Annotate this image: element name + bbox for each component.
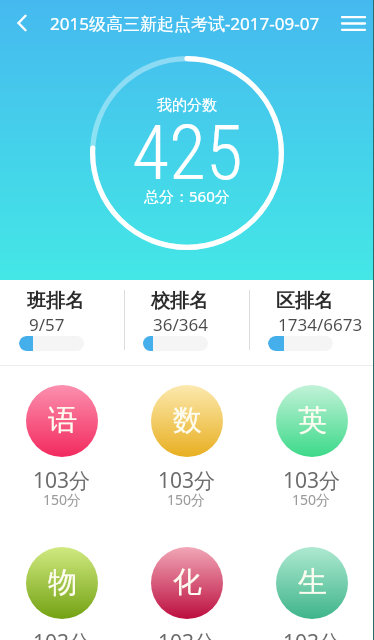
staticText: 英 bbox=[298, 402, 327, 439]
staticText: 150分 bbox=[167, 490, 206, 509]
staticText: 总分：560分 bbox=[144, 186, 230, 206]
staticText: 班排名 bbox=[27, 289, 84, 313]
staticText: 校排名 bbox=[151, 289, 208, 313]
staticText: 1734/6673 bbox=[278, 313, 363, 336]
staticText: 9/57 bbox=[29, 313, 65, 336]
staticText: 103分 bbox=[33, 466, 91, 495]
staticText: 物 bbox=[48, 564, 77, 601]
staticText: 103分 bbox=[33, 628, 91, 640]
staticText: 语 bbox=[48, 402, 77, 439]
staticText: 150分 bbox=[43, 490, 82, 509]
staticText: 103分 bbox=[283, 628, 341, 640]
button[interactable]: 化 bbox=[124, 528, 249, 640]
staticText: 数 bbox=[173, 402, 202, 439]
staticText: 36/364 bbox=[153, 313, 208, 336]
button[interactable]: 物 bbox=[0, 528, 124, 640]
staticText: 区排名 bbox=[276, 289, 333, 313]
button[interactable]: 区排名 bbox=[249, 280, 374, 365]
button[interactable]: Menu bbox=[332, 0, 374, 46]
button[interactable]: 数 bbox=[124, 366, 249, 528]
staticText: 2015级高三新起点考试-2017-09-07 bbox=[50, 12, 320, 35]
staticText: 我的分数 bbox=[157, 96, 217, 115]
button[interactable]: Back bbox=[0, 0, 44, 46]
staticText: 103分 bbox=[158, 628, 216, 640]
button[interactable]: 校排名 bbox=[124, 280, 249, 365]
button[interactable]: 语 bbox=[0, 366, 124, 528]
staticText: 150分 bbox=[292, 490, 331, 509]
button[interactable]: 班排名 bbox=[0, 280, 124, 365]
staticText: 生 bbox=[298, 564, 327, 601]
staticText: 425 bbox=[132, 108, 243, 197]
staticText: 103分 bbox=[283, 466, 341, 495]
staticText: 化 bbox=[173, 564, 202, 601]
button[interactable]: 英 bbox=[249, 366, 374, 528]
staticText: 103分 bbox=[158, 466, 216, 495]
button[interactable]: 生 bbox=[249, 528, 374, 640]
